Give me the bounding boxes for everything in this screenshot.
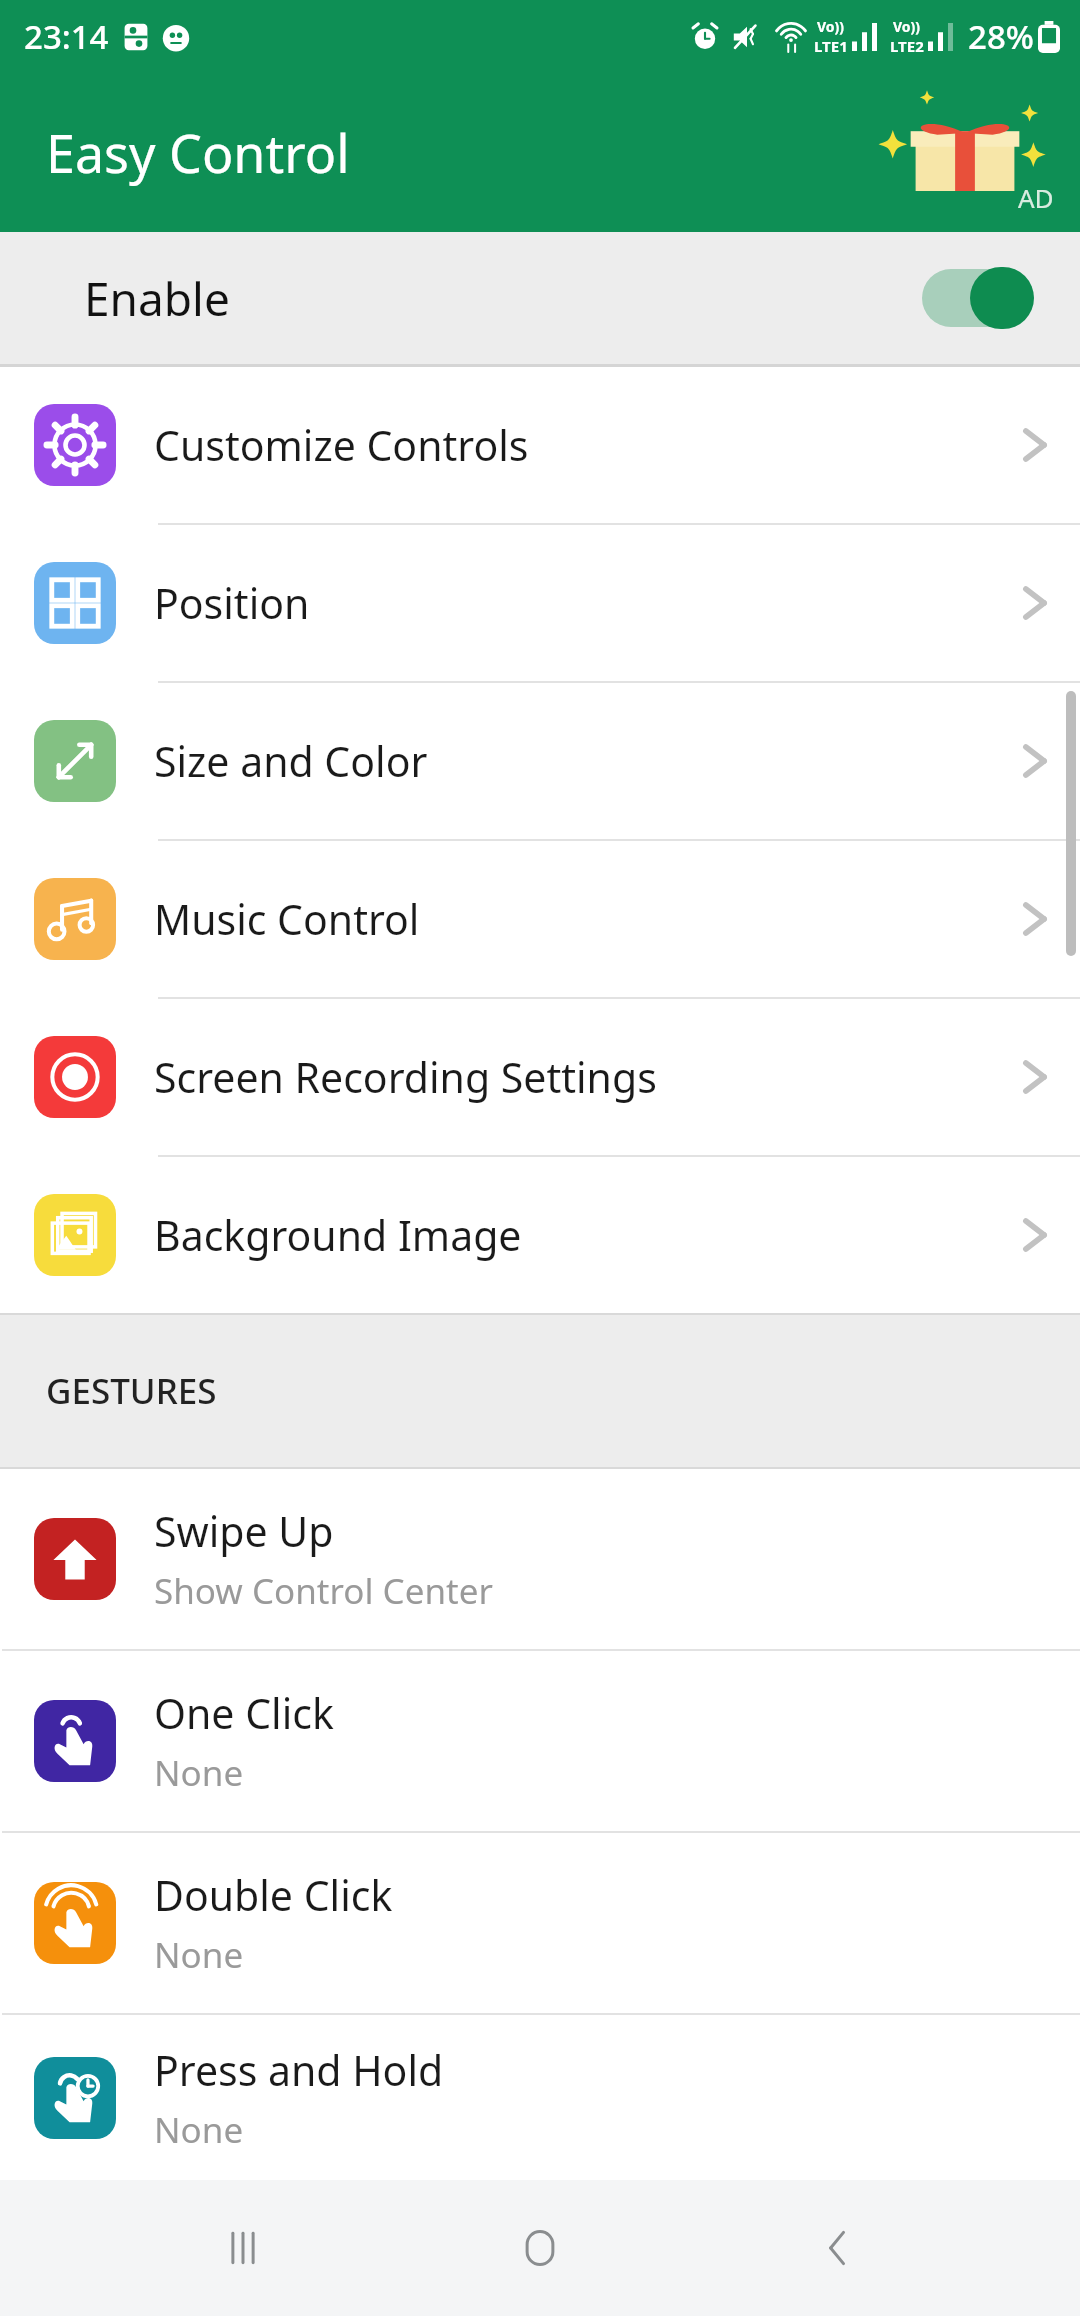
button[interactable]: Swipe Up <box>0 1469 1080 1649</box>
staticText: 28% <box>968 14 1034 59</box>
staticText: Background Image <box>154 1207 1022 1263</box>
staticText: AD <box>1018 180 1054 215</box>
staticText: Screen Recording Settings <box>154 1049 1022 1105</box>
staticText: Music Control <box>154 891 1022 947</box>
staticText: Size and Color <box>154 733 1022 789</box>
staticText: LTE2 <box>890 36 924 56</box>
staticText: LTE1 <box>814 36 848 56</box>
staticText: Vo)) <box>817 17 845 36</box>
button[interactable]: Customize Controls <box>0 367 1080 523</box>
button[interactable]: Double Click <box>0 1833 1080 2013</box>
button[interactable]: Home <box>485 2193 595 2303</box>
button[interactable]: Screen Recording Settings <box>0 999 1080 1155</box>
staticText: Swipe Up <box>154 1503 334 1559</box>
button[interactable]: Position <box>0 525 1080 681</box>
button[interactable]: Size and Color <box>0 683 1080 839</box>
staticText: Enable <box>84 267 230 330</box>
staticText: None <box>154 1931 244 1979</box>
staticText: None <box>154 2106 244 2154</box>
button[interactable]: One Click <box>0 1651 1080 1831</box>
button[interactable]: Recent apps <box>188 2193 298 2303</box>
staticText: Customize Controls <box>154 417 1022 473</box>
staticText: Double Click <box>154 1867 393 1923</box>
button[interactable]: Gift advertisement <box>870 87 1060 217</box>
staticText: None <box>154 1749 244 1797</box>
button[interactable]: Music Control <box>0 841 1080 997</box>
button[interactable]: Back <box>783 2193 893 2303</box>
button[interactable]: Background Image <box>0 1157 1080 1313</box>
staticText: 23:14 <box>24 14 109 59</box>
button[interactable]: Press and Hold <box>0 2015 1080 2180</box>
staticText: Easy Control <box>46 117 350 188</box>
staticText: Show Control Center <box>154 1567 493 1615</box>
staticText: GESTURES <box>46 1367 217 1415</box>
button[interactable]: Enable <box>0 232 1080 364</box>
staticText: One Click <box>154 1685 334 1741</box>
staticText: Position <box>154 575 1022 631</box>
staticText: Vo)) <box>893 17 921 36</box>
staticText: Press and Hold <box>154 2042 444 2098</box>
